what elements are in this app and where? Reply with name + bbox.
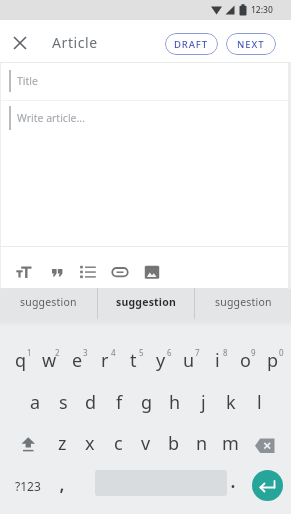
button[interactable]: g — [133, 389, 161, 415]
staticText: m — [222, 431, 239, 456]
staticText: suggestion — [116, 295, 176, 309]
staticText: p — [267, 348, 279, 373]
staticText: ?123 — [15, 478, 41, 494]
staticText: NEXT — [237, 38, 265, 51]
staticText: , — [59, 467, 65, 493]
button[interactable] — [250, 433, 280, 459]
staticText: . — [230, 464, 236, 490]
staticText: c — [114, 431, 123, 456]
staticText: 0 — [279, 347, 284, 358]
staticText: h — [169, 390, 181, 415]
button[interactable]: p — [259, 347, 287, 373]
button[interactable]: Title — [0, 63, 291, 100]
staticText: y — [156, 348, 166, 373]
button[interactable]: h — [161, 389, 189, 415]
staticText: s — [59, 390, 68, 415]
button[interactable] — [13, 431, 43, 457]
button[interactable] — [138, 258, 166, 286]
staticText: i — [215, 348, 220, 373]
button[interactable]: Write article... — [0, 101, 291, 246]
button[interactable]: NEXT — [226, 33, 276, 55]
button[interactable]: v — [132, 430, 160, 456]
button[interactable]: , — [48, 467, 76, 493]
staticText: e — [72, 348, 83, 373]
button[interactable]: e — [63, 347, 91, 373]
button[interactable]: c — [104, 430, 132, 456]
staticText: j — [201, 390, 206, 415]
staticText: Article — [52, 33, 98, 52]
staticText: g — [141, 390, 153, 415]
button[interactable]: suggestion — [0, 288, 97, 319]
button[interactable]: z — [48, 430, 76, 456]
staticText: n — [196, 431, 208, 456]
staticText: suggestion — [215, 295, 272, 309]
button[interactable]: n — [188, 430, 216, 456]
staticText: a — [30, 390, 41, 415]
staticText: k — [226, 390, 236, 415]
staticText: 6 — [167, 347, 172, 358]
staticText: z — [58, 431, 67, 456]
button[interactable]: j — [189, 389, 217, 415]
button[interactable] — [74, 258, 102, 286]
button[interactable]: y — [147, 347, 175, 373]
button[interactable]: b — [160, 430, 188, 456]
staticText: DRAFT — [174, 38, 209, 51]
button[interactable]: . — [219, 464, 247, 490]
staticText: 4 — [111, 347, 116, 358]
staticText: 5 — [139, 347, 144, 358]
staticText: l — [257, 390, 262, 415]
button[interactable]: l — [245, 389, 273, 415]
button[interactable]: suggestion — [98, 288, 194, 319]
button[interactable]: f — [105, 389, 133, 415]
button[interactable]: DRAFT — [165, 33, 218, 55]
button[interactable]: ?123 — [10, 474, 46, 498]
button[interactable] — [106, 258, 134, 286]
button[interactable]: x — [76, 430, 104, 456]
staticText: r — [101, 348, 109, 373]
button[interactable]: s — [49, 389, 77, 415]
button[interactable]: u — [175, 347, 203, 373]
staticText: 8 — [223, 347, 228, 358]
button[interactable]: t — [119, 347, 147, 373]
button[interactable]: q — [7, 347, 35, 373]
staticText: 2 — [55, 347, 60, 358]
staticText: suggestion — [20, 295, 77, 309]
staticText: Write article... — [17, 111, 85, 125]
staticText: 9 — [251, 347, 256, 358]
staticText: 1 — [27, 347, 32, 358]
button[interactable]: i — [203, 347, 231, 373]
staticText: t — [130, 348, 137, 373]
button[interactable]: m — [216, 430, 244, 456]
button[interactable]: r — [91, 347, 119, 373]
button[interactable] — [10, 258, 38, 286]
button[interactable]: suggestion — [195, 288, 291, 319]
button[interactable]: a — [21, 389, 49, 415]
staticText: v — [141, 431, 151, 456]
staticText: 3 — [83, 347, 88, 358]
staticText: 7 — [195, 347, 200, 358]
button[interactable]: w — [35, 347, 63, 373]
button[interactable]: o — [231, 347, 259, 373]
staticText: 12:30 — [251, 4, 273, 16]
button[interactable] — [252, 470, 283, 501]
button[interactable] — [42, 258, 70, 286]
staticText: x — [85, 431, 95, 456]
staticText: f — [116, 390, 123, 415]
button[interactable] — [8, 31, 32, 55]
staticText: q — [15, 348, 27, 373]
button[interactable]: k — [217, 389, 245, 415]
staticText: o — [240, 348, 251, 373]
button[interactable]: d — [77, 389, 105, 415]
staticText: Title — [17, 74, 38, 88]
staticText: b — [168, 431, 180, 456]
staticText: w — [42, 348, 57, 373]
staticText: u — [183, 348, 195, 373]
staticText: d — [85, 390, 97, 415]
